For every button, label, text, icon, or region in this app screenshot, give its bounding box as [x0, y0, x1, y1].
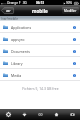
button[interactable]: Settings: [0, 109, 16, 120]
button[interactable]: Info about Media: [73, 74, 76, 77]
button[interactable]: Info about Applications: [73, 26, 76, 29]
button[interactable]: Documents: [0, 45, 80, 57]
staticText: Documents: [11, 49, 30, 54]
staticText: Library: [11, 61, 23, 66]
button[interactable]: Network: [16, 109, 32, 120]
button[interactable]: Media: [0, 69, 80, 81]
staticText: Modifier: [64, 9, 77, 13]
staticText: Fichiers 5, 14.3 GB free: [22, 86, 59, 91]
staticText: appsync: [11, 37, 25, 42]
button[interactable]: Applications: [0, 21, 80, 33]
button[interactable]: Home: [48, 109, 64, 120]
button[interactable]: appsync: [0, 33, 80, 45]
staticText: Applications: [11, 25, 32, 30]
button[interactable]: Info about appsync: [73, 38, 76, 41]
button[interactable]: Info about Library: [73, 62, 76, 65]
staticText: 90%: [66, 1, 73, 5]
staticText: /var/mobile: [1, 17, 18, 21]
button[interactable]: Library: [0, 57, 80, 69]
button[interactable]: Back to var: [1, 7, 14, 14]
button[interactable]: Info about Documents: [73, 50, 76, 53]
button[interactable]: Camera: [64, 109, 80, 120]
button[interactable]: Modifier: [62, 7, 79, 14]
staticText: mobile: [32, 8, 48, 14]
staticText: 06:13: [36, 1, 44, 5]
staticText: Orange F: [7, 1, 21, 5]
staticText: Media: [11, 73, 22, 78]
staticText: var: [6, 9, 11, 13]
button[interactable]: Bookmarks: [32, 109, 48, 120]
staticText: 3G: [22, 1, 27, 5]
